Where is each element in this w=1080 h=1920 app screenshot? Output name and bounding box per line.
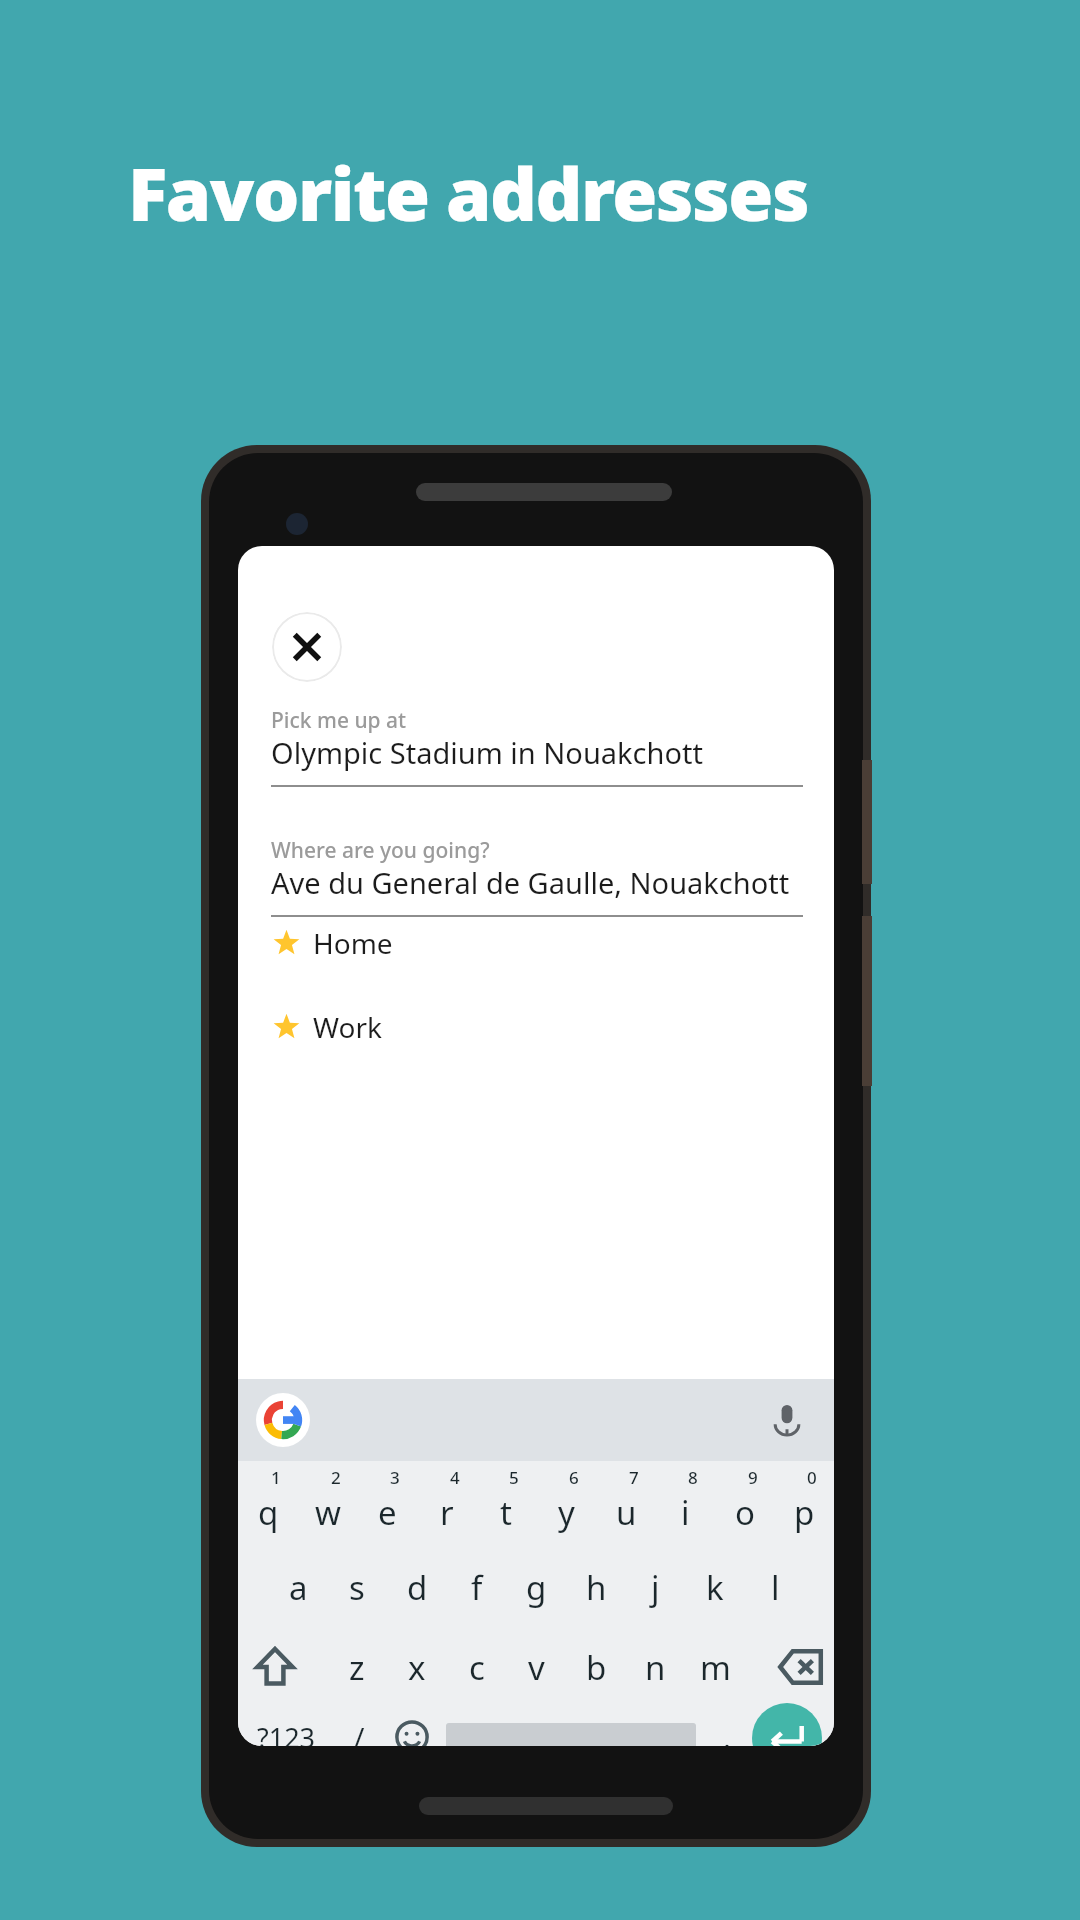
staticText: l [771, 1565, 780, 1610]
staticText: Work [313, 1008, 382, 1046]
button[interactable]: / [334, 1707, 384, 1746]
staticText: / [354, 1718, 365, 1746]
staticText: 5 [509, 1466, 519, 1489]
button[interactable]: c [447, 1631, 507, 1703]
staticText: Where are you going? [271, 836, 490, 865]
staticText: h [586, 1565, 607, 1610]
staticText: b [586, 1645, 607, 1690]
button[interactable]: Enter [752, 1703, 822, 1746]
staticText: 0 [807, 1466, 817, 1489]
staticText: Favorite addresses [128, 143, 809, 242]
staticText: 9 [748, 1466, 758, 1489]
button[interactable]: m [685, 1631, 745, 1703]
staticText: Olympic Stadium in Nouakchott [271, 733, 703, 772]
button[interactable]: s [327, 1551, 387, 1623]
button[interactable]: t [476, 1463, 536, 1545]
staticText: m [700, 1645, 731, 1690]
staticText: 6 [569, 1466, 579, 1489]
staticText: y [558, 1490, 575, 1535]
button[interactable]: z [327, 1631, 387, 1703]
staticText: a [289, 1565, 308, 1610]
button[interactable]: u [596, 1463, 656, 1545]
staticText: j [651, 1565, 660, 1610]
staticText: o [735, 1490, 755, 1535]
button[interactable]: x [387, 1631, 447, 1703]
button[interactable]: i [655, 1463, 715, 1545]
button[interactable]: q [238, 1463, 298, 1545]
button[interactable]: p [774, 1463, 834, 1545]
button[interactable]: r [417, 1463, 477, 1545]
button[interactable]: g [506, 1551, 566, 1623]
button[interactable]: n [625, 1631, 685, 1703]
button[interactable]: Emoji [384, 1707, 440, 1746]
button[interactable]: Home [256, 908, 816, 976]
staticText: w [315, 1490, 341, 1535]
staticText: ?123 [257, 1719, 316, 1746]
button[interactable]: k [685, 1551, 745, 1623]
button[interactable]: d [387, 1551, 447, 1623]
staticText: 8 [688, 1466, 698, 1489]
staticText: z [349, 1645, 365, 1690]
staticText: q [258, 1490, 279, 1535]
staticText: u [616, 1490, 637, 1535]
button[interactable]: Close [272, 612, 342, 682]
button[interactable]: Work [256, 992, 816, 1060]
staticText: 4 [450, 1466, 460, 1489]
button[interactable]: e [357, 1463, 417, 1545]
button[interactable]: . [706, 1707, 748, 1746]
button[interactable]: Shift [240, 1631, 310, 1703]
staticText: c [469, 1645, 485, 1690]
button[interactable]: f [447, 1551, 507, 1623]
staticText: p [794, 1490, 815, 1535]
button[interactable]: ?123 [238, 1707, 334, 1746]
staticText: e [378, 1490, 397, 1535]
staticText: k [706, 1565, 724, 1610]
staticText: r [440, 1490, 454, 1535]
staticText: v [528, 1645, 545, 1690]
staticText: 3 [390, 1466, 400, 1489]
button[interactable]: Backspace [762, 1631, 832, 1703]
button[interactable]: v [506, 1631, 566, 1703]
button[interactable]: Google [256, 1393, 310, 1447]
staticText: 2 [331, 1466, 341, 1489]
staticText: Home [313, 924, 393, 962]
staticText: x [408, 1645, 426, 1690]
staticText: d [407, 1565, 428, 1610]
button[interactable]: Where are you going? [271, 836, 803, 916]
button[interactable]: b [566, 1631, 626, 1703]
staticText: g [526, 1565, 547, 1610]
staticText: Ave du General de Gaulle, Nouakchott [271, 863, 790, 902]
staticText: 7 [629, 1466, 639, 1489]
staticText: Pick me up at [271, 706, 407, 735]
button[interactable]: w [298, 1463, 358, 1545]
button[interactable]: a [268, 1551, 328, 1623]
staticText: . [723, 1717, 732, 1746]
staticText: n [645, 1645, 666, 1690]
button[interactable]: Voice input [760, 1393, 814, 1447]
button[interactable]: y [536, 1463, 596, 1545]
staticText: 1 [271, 1466, 281, 1489]
staticText: s [349, 1565, 365, 1610]
button[interactable]: j [625, 1551, 685, 1623]
staticText: t [500, 1490, 512, 1535]
button[interactable]: Pick me up at [271, 706, 803, 786]
button[interactable]: h [566, 1551, 626, 1623]
staticText: i [681, 1490, 690, 1535]
staticText: f [471, 1565, 483, 1610]
button[interactable]: l [745, 1551, 805, 1623]
button[interactable]: o [715, 1463, 775, 1545]
